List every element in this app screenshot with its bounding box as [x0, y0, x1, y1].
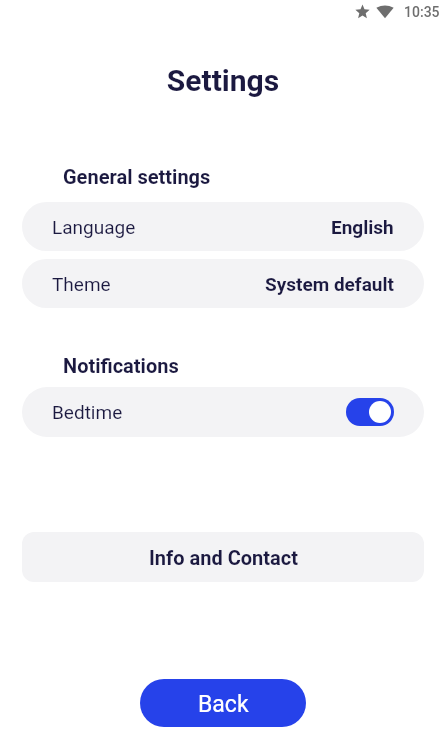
- button[interactable]: Info and Contact: [22, 532, 424, 582]
- staticText: Info and Contact: [149, 546, 298, 569]
- button[interactable]: Theme: [22, 259, 424, 308]
- staticText: Theme: [52, 273, 111, 295]
- button[interactable]: Back: [140, 679, 306, 727]
- staticText: Back: [198, 691, 249, 718]
- staticText: Settings: [0, 63, 446, 98]
- staticText: System default: [265, 273, 394, 295]
- staticText: English: [331, 216, 394, 238]
- staticText: 10:35: [404, 4, 440, 20]
- button[interactable]: Bedtime: [22, 387, 424, 437]
- staticText: Notifications: [63, 354, 179, 377]
- staticText: General settings: [63, 165, 211, 188]
- other: Starred: [355, 4, 370, 19]
- staticText: Language: [52, 216, 136, 238]
- other: Wi-Fi: [376, 5, 394, 19]
- button[interactable]: Language: [22, 202, 424, 251]
- staticText: Bedtime: [52, 401, 123, 423]
- button[interactable]: Toggle bedtime notifications: [346, 398, 394, 426]
